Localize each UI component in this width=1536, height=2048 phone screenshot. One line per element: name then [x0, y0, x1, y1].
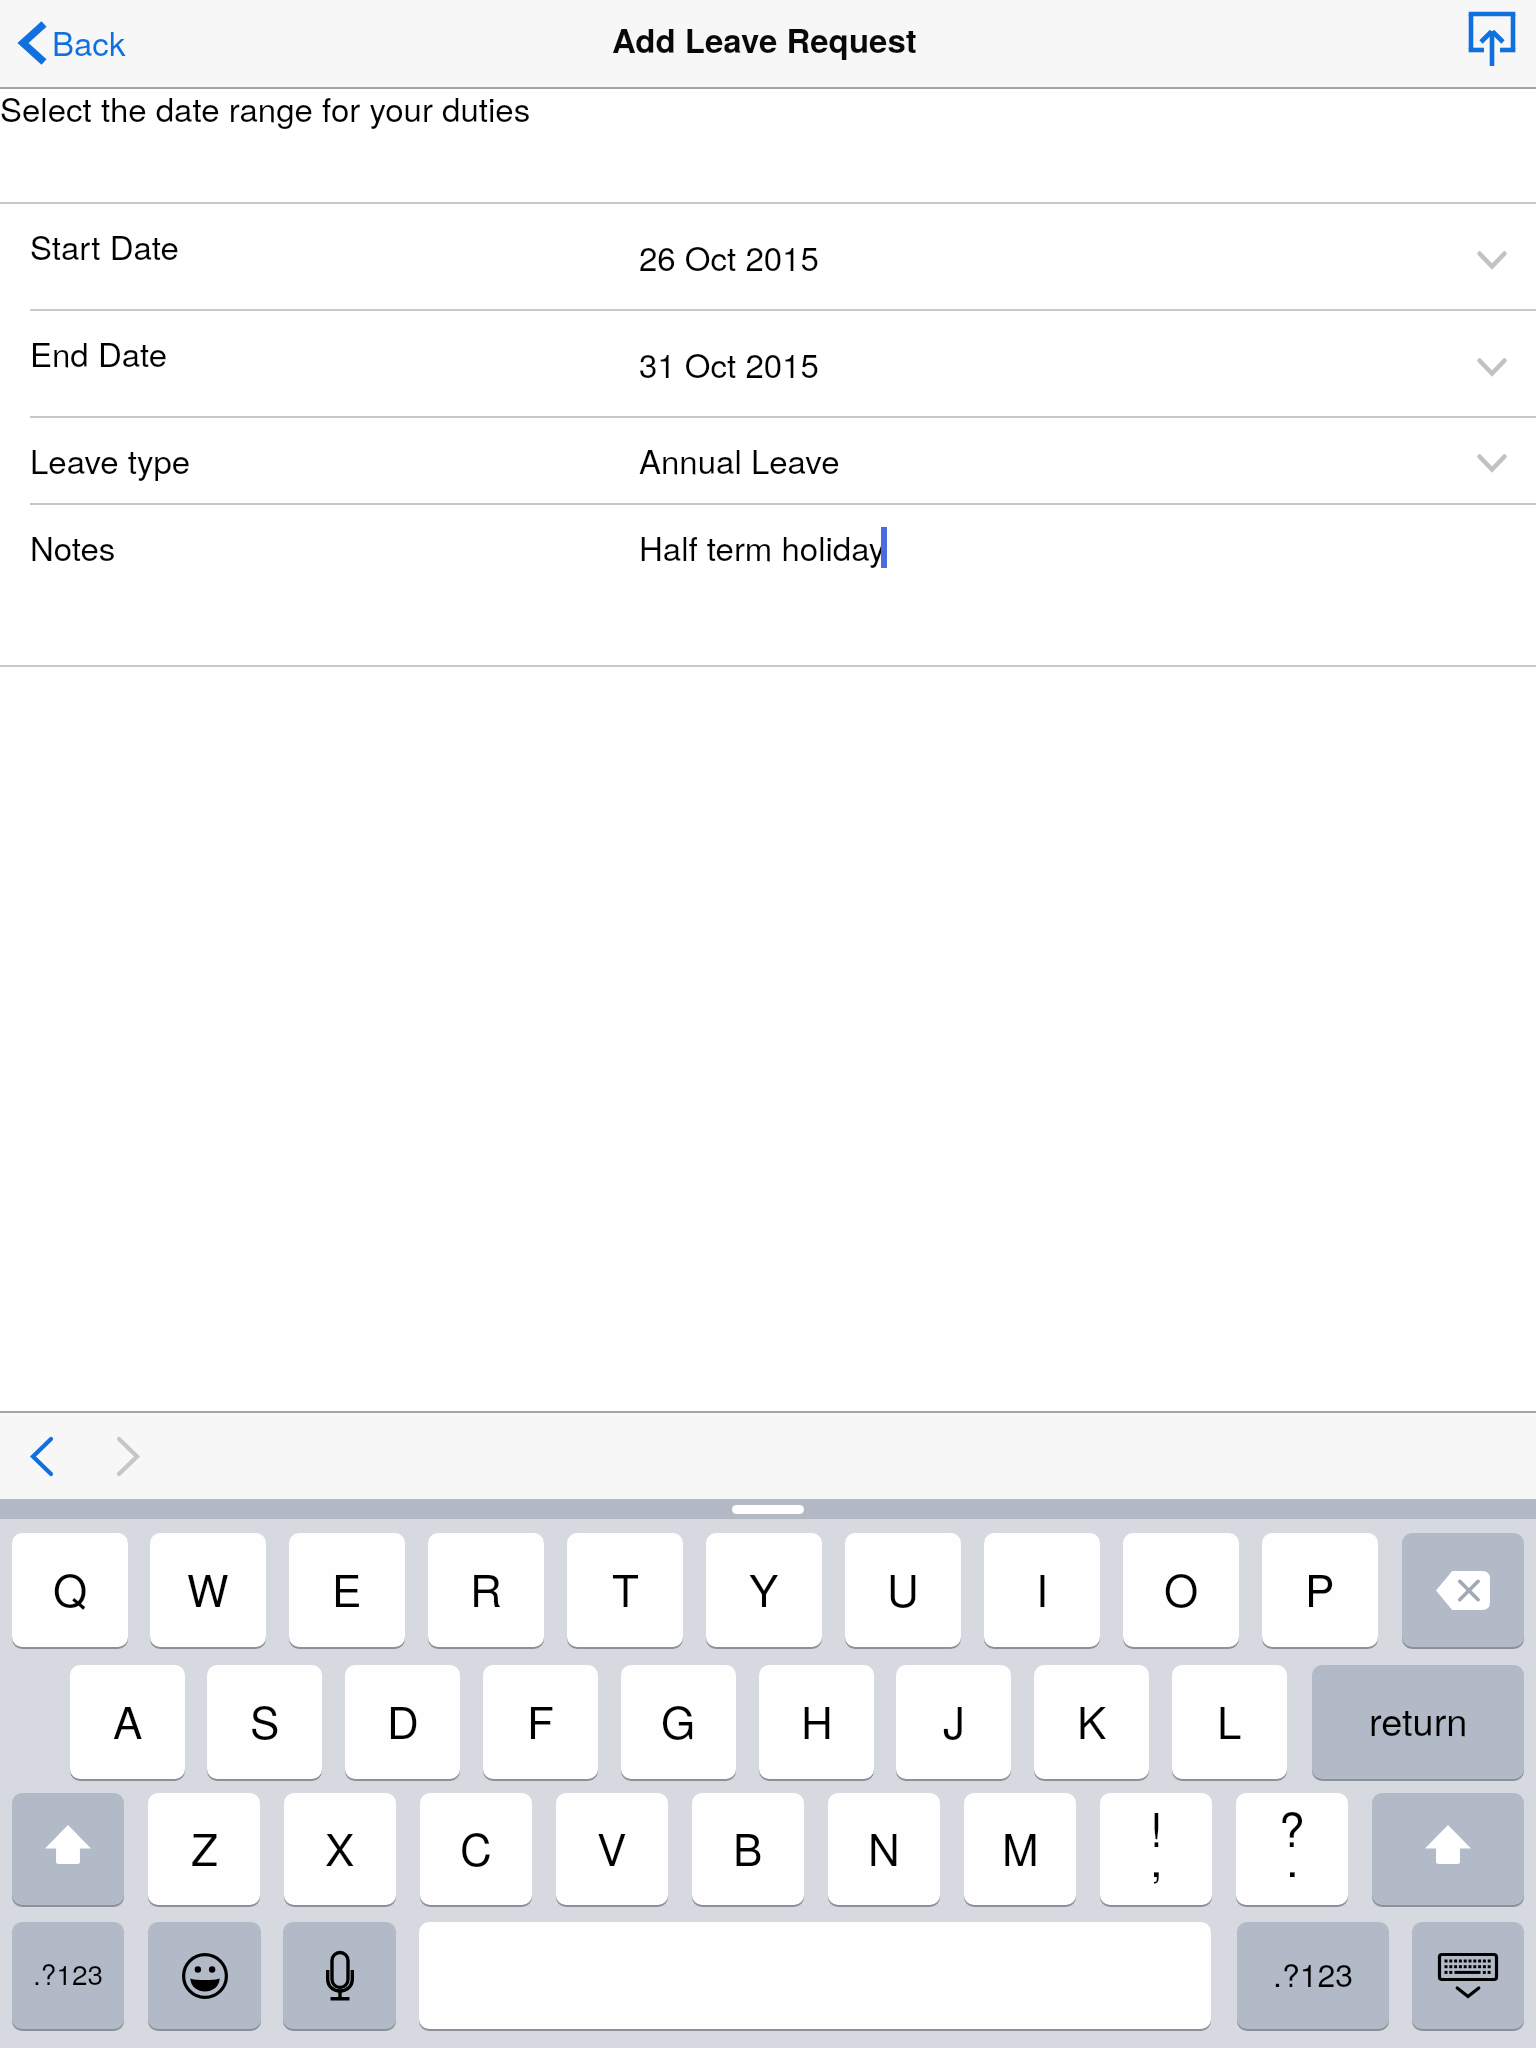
- staticText: Half term holiday: [639, 523, 886, 570]
- staticText: End Date: [30, 329, 168, 376]
- staticText: M: [1002, 1815, 1039, 1878]
- staticText: Back: [52, 18, 126, 65]
- button[interactable]: End Date: [0, 311, 1536, 418]
- staticText: .?123: [33, 1953, 104, 1993]
- staticText: X: [325, 1815, 355, 1878]
- staticText: Start Date: [30, 222, 179, 269]
- button[interactable]: C: [420, 1793, 532, 1905]
- button[interactable]: Shift: [12, 1793, 124, 1905]
- staticText: F: [527, 1688, 554, 1751]
- staticText: U: [887, 1556, 919, 1619]
- button[interactable]: N: [828, 1793, 940, 1905]
- staticText: Annual Leave: [639, 436, 840, 483]
- staticText: return: [1369, 1692, 1468, 1746]
- button[interactable]: Back: [0, 11, 142, 74]
- button[interactable]: Y: [706, 1533, 822, 1647]
- button[interactable]: Z: [148, 1793, 260, 1905]
- button[interactable]: S: [207, 1665, 322, 1779]
- button[interactable]: D: [345, 1665, 460, 1779]
- button[interactable]: Share: [1450, 0, 1536, 86]
- button[interactable]: Delete: [1402, 1533, 1524, 1647]
- staticText: L: [1217, 1688, 1242, 1751]
- staticText: W: [187, 1556, 229, 1619]
- button[interactable]: J: [896, 1665, 1011, 1779]
- button[interactable]: Emoji: [148, 1922, 261, 2029]
- staticText: Notes: [30, 523, 116, 570]
- staticText: B: [733, 1815, 763, 1878]
- staticText: .: [1286, 1824, 1299, 1890]
- button[interactable]: B: [692, 1793, 804, 1905]
- staticText: .?123: [1273, 1950, 1354, 1996]
- button[interactable]: T: [567, 1533, 683, 1647]
- button[interactable]: Start Date: [0, 204, 1536, 311]
- staticText: V: [597, 1815, 627, 1878]
- button[interactable]: Shift: [1372, 1793, 1524, 1905]
- button[interactable]: return: [1312, 1665, 1524, 1779]
- button[interactable]: Space: [1236, 1793, 1348, 1905]
- button[interactable]: Dictate: [283, 1922, 396, 2029]
- staticText: Q: [53, 1556, 88, 1619]
- button[interactable]: W: [150, 1533, 266, 1647]
- button[interactable]: A: [70, 1665, 185, 1779]
- staticText: E: [332, 1556, 362, 1619]
- button[interactable]: M: [964, 1793, 1076, 1905]
- button[interactable]: P: [1262, 1533, 1378, 1647]
- staticText: 26 Oct 2015: [639, 233, 819, 280]
- button[interactable]: Notes: [0, 505, 1536, 667]
- staticText: S: [250, 1688, 280, 1751]
- staticText: Z: [191, 1815, 218, 1878]
- staticText: R: [470, 1556, 502, 1619]
- button[interactable]: K: [1034, 1665, 1149, 1779]
- staticText: Y: [749, 1556, 779, 1619]
- button[interactable]: V: [556, 1793, 668, 1905]
- button[interactable]: H: [759, 1665, 874, 1779]
- staticText: Leave type: [30, 436, 191, 483]
- staticText: K: [1077, 1688, 1107, 1751]
- staticText: H: [801, 1688, 833, 1751]
- staticText: ?: [1279, 1794, 1305, 1860]
- button[interactable]: G: [621, 1665, 736, 1779]
- staticText: ,: [1150, 1824, 1163, 1890]
- staticText: Select the date range for your duties: [0, 84, 531, 131]
- staticText: I: [1036, 1556, 1049, 1619]
- button[interactable]: Hide keyboard: [1412, 1922, 1524, 2029]
- button[interactable]: Previous field: [2, 1413, 82, 1499]
- button[interactable]: Q: [12, 1533, 128, 1647]
- button[interactable]: Next field: [88, 1413, 168, 1499]
- button[interactable]: L: [1172, 1665, 1287, 1779]
- staticText: O: [1164, 1556, 1199, 1619]
- button[interactable]: .?123: [12, 1922, 124, 2029]
- button[interactable]: Space: [1100, 1793, 1212, 1905]
- staticText: D: [387, 1688, 419, 1751]
- staticText: A: [113, 1688, 143, 1751]
- button[interactable]: I: [984, 1533, 1100, 1647]
- staticText: T: [612, 1556, 639, 1619]
- staticText: C: [460, 1815, 492, 1878]
- staticText: 31 Oct 2015: [639, 340, 819, 387]
- button[interactable]: X: [284, 1793, 396, 1905]
- button[interactable]: Leave type: [0, 418, 1536, 505]
- button[interactable]: U: [845, 1533, 961, 1647]
- staticText: N: [868, 1815, 900, 1878]
- button[interactable]: O: [1123, 1533, 1239, 1647]
- button[interactable]: .?123: [1237, 1922, 1389, 2029]
- staticText: G: [661, 1688, 696, 1751]
- button[interactable]: F: [483, 1665, 598, 1779]
- staticText: Add Leave Request: [612, 16, 917, 63]
- button[interactable]: R: [428, 1533, 544, 1647]
- staticText: J: [943, 1688, 965, 1751]
- button[interactable]: E: [289, 1533, 405, 1647]
- staticText: P: [1305, 1556, 1335, 1619]
- staticText: !: [1150, 1794, 1163, 1860]
